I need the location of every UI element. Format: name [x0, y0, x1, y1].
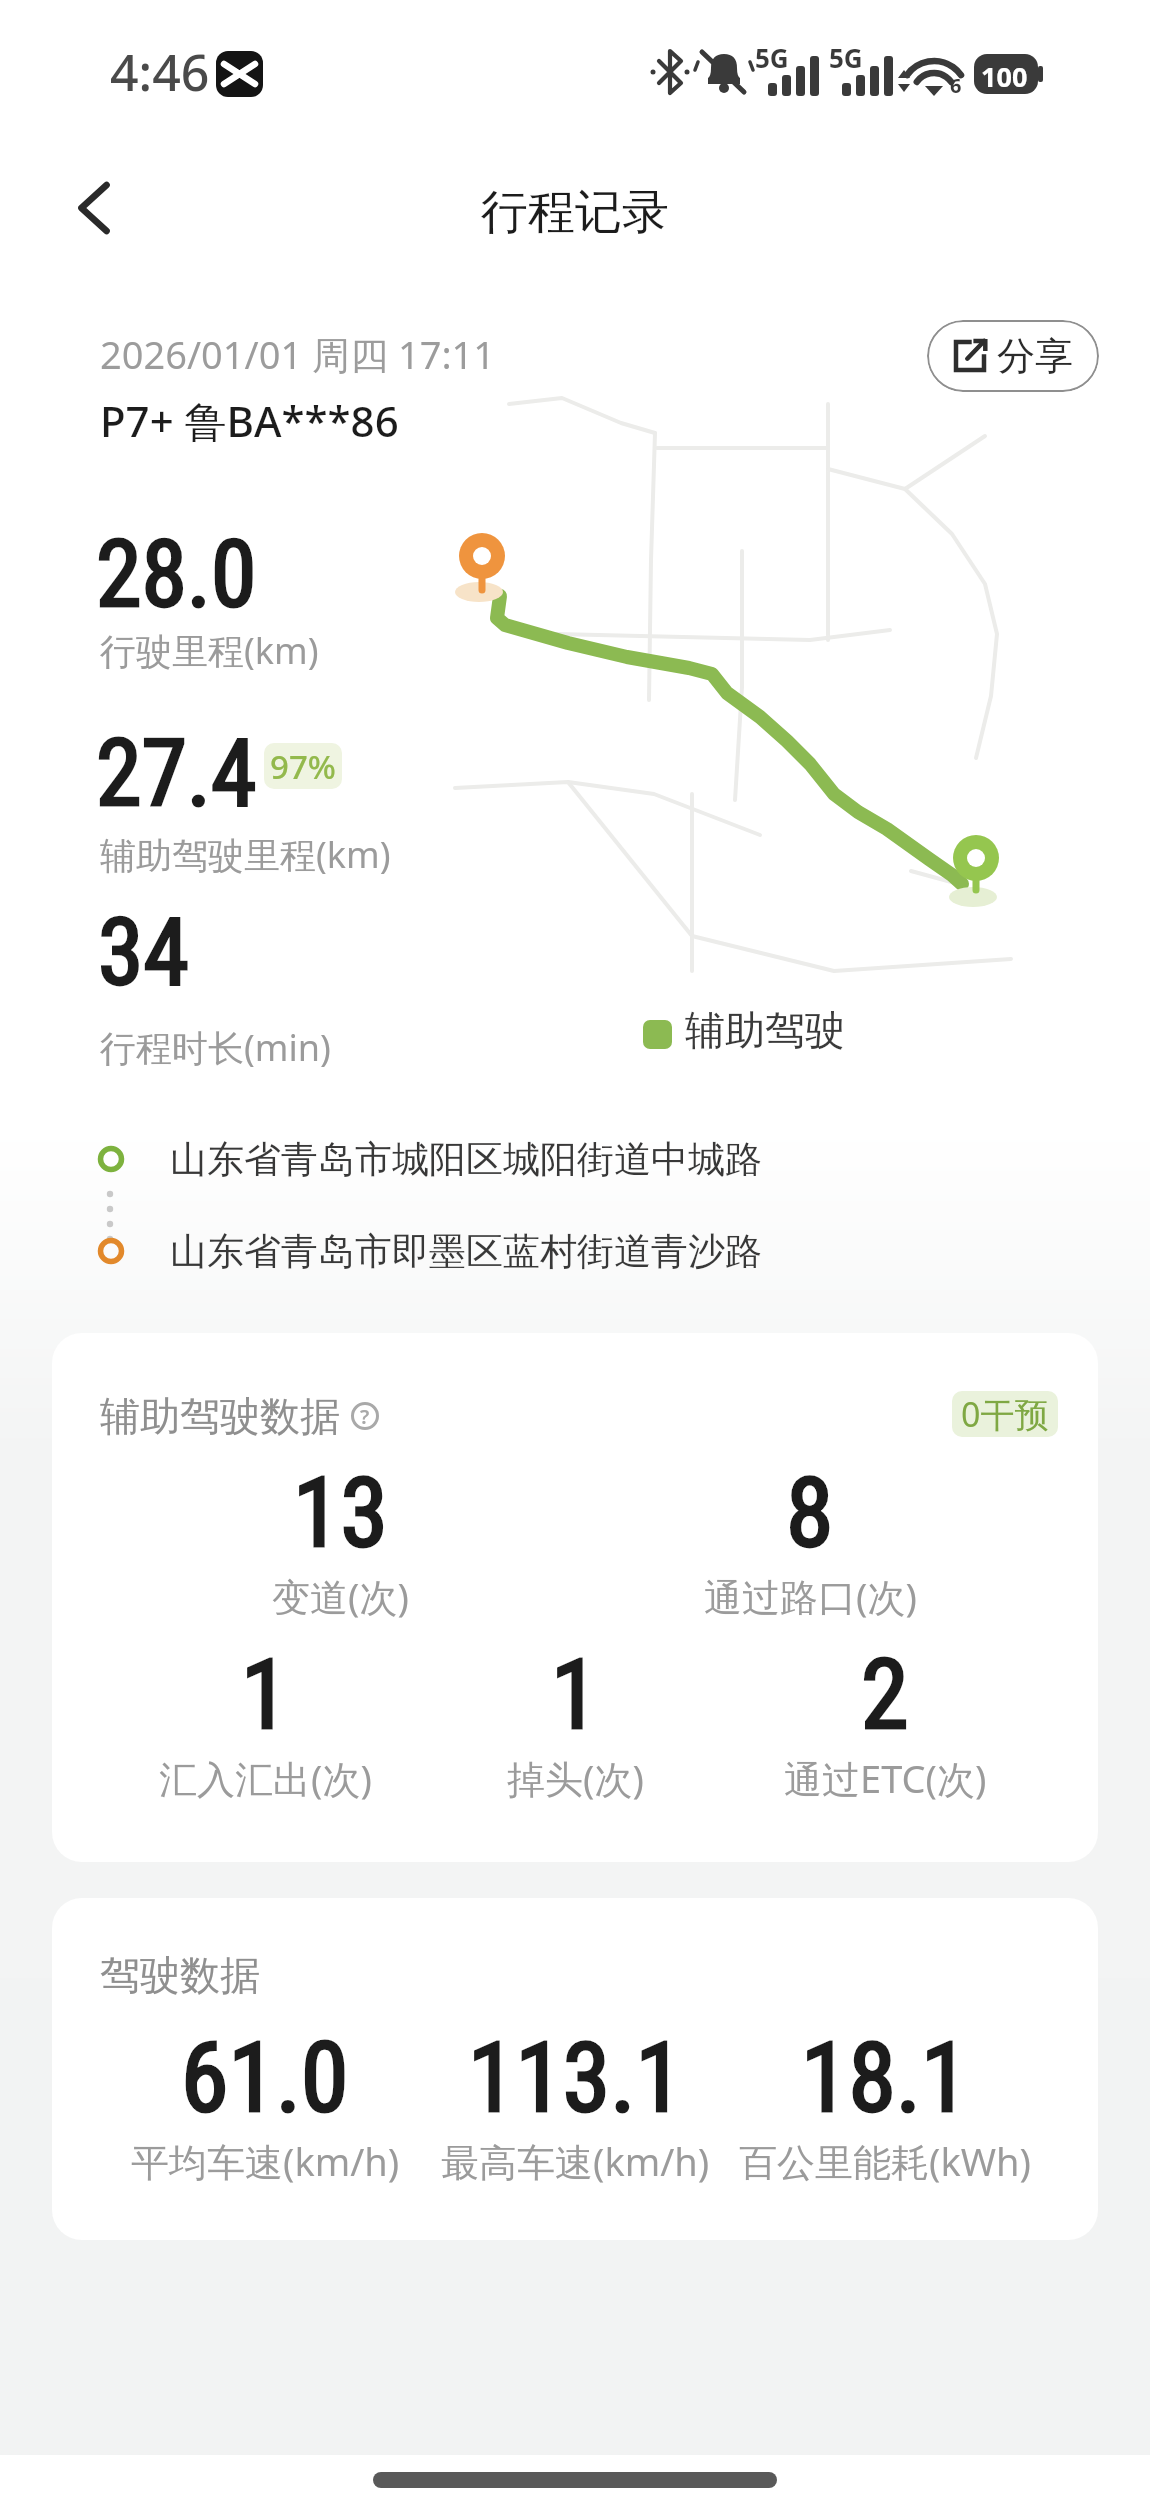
button[interactable]: ?	[350, 1401, 380, 1431]
staticText: 百公里能耗(kWh)	[739, 2135, 1031, 2187]
staticText: 6	[950, 72, 962, 99]
staticText: 27.4	[96, 720, 257, 828]
button[interactable]: 分享	[927, 320, 1099, 392]
staticText: 5G	[755, 40, 789, 75]
staticText: 通过路口(次)	[704, 1570, 917, 1622]
staticText: 8	[786, 1457, 834, 1570]
staticText: 行程记录	[481, 183, 669, 242]
staticText: 113.1	[468, 2022, 683, 2135]
staticText: 分享	[997, 332, 1073, 380]
staticText: 5G	[829, 40, 863, 75]
staticText: 平均车速(km/h)	[131, 2135, 400, 2187]
staticText: 1	[551, 1639, 599, 1752]
staticText: 2	[861, 1639, 909, 1752]
staticText: 辅助驾驶	[685, 1005, 845, 1055]
button[interactable]	[62, 176, 126, 240]
staticText: P7+ 鲁BA***86	[100, 392, 399, 449]
staticText: 山东省青岛市城阳区城阳街道中城路	[170, 1136, 762, 1183]
staticText: 4:46	[110, 38, 210, 106]
staticText: 驾驶数据	[100, 1950, 260, 2000]
staticText: 61.0	[181, 2022, 349, 2135]
staticText: 变道(次)	[272, 1570, 409, 1622]
staticText: 行驶里程(km)	[100, 626, 319, 675]
staticText: 18.1	[801, 2022, 969, 2135]
staticText: 1	[241, 1639, 289, 1752]
staticText: 28.0	[96, 521, 257, 629]
staticText: 0干预	[961, 1391, 1049, 1437]
staticText: 汇入汇出(次)	[159, 1752, 372, 1804]
staticText: 最高车速(km/h)	[441, 2135, 710, 2187]
staticText: 通过ETC(次)	[784, 1752, 987, 1804]
staticText: 山东省青岛市即墨区蓝村街道青沙路	[170, 1228, 762, 1275]
staticText: ?	[360, 1403, 370, 1430]
staticText: 100	[981, 58, 1028, 95]
staticText: 辅助驾驶数据	[100, 1391, 340, 1441]
staticText: 2026/01/01 周四 17:11	[100, 328, 496, 380]
staticText: 13	[293, 1457, 388, 1570]
staticText: 辅助驾驶里程(km)	[100, 830, 391, 879]
staticText: 34	[98, 899, 189, 1007]
staticText: 97%	[270, 744, 336, 789]
staticText: 行程时长(min)	[100, 1023, 331, 1072]
staticText: 掉头(次)	[507, 1752, 644, 1804]
